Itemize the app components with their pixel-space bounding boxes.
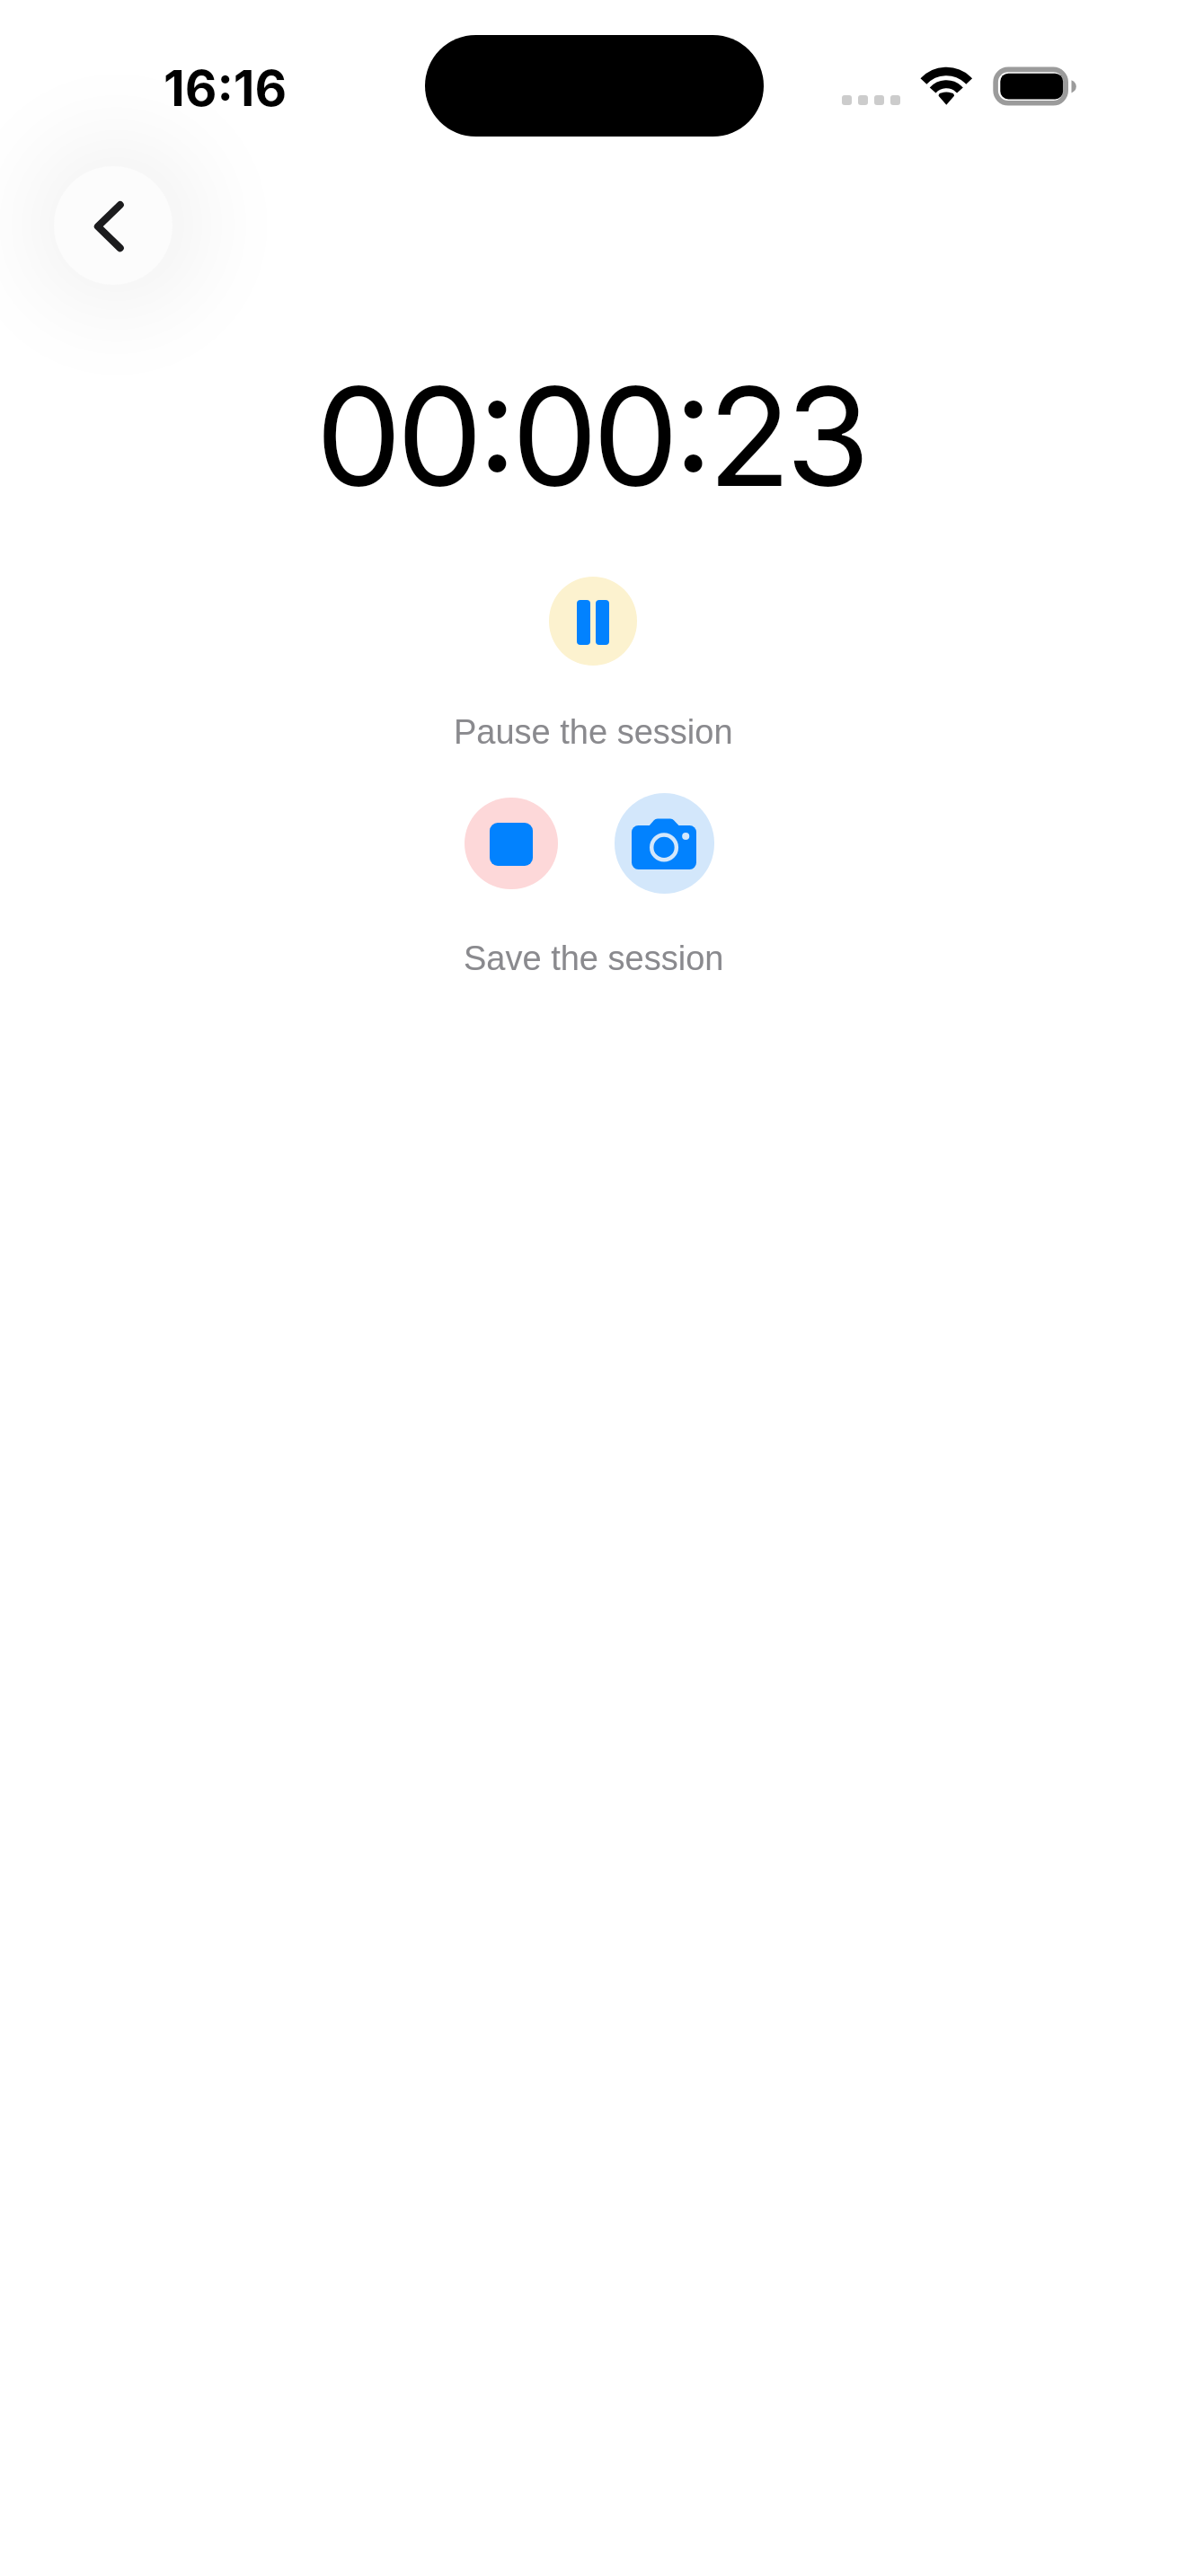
staticText: Save the session (464, 940, 724, 977)
button[interactable]: Pause the session (549, 577, 637, 666)
button[interactable]: Back (54, 166, 173, 285)
staticText: 16:16 (164, 58, 288, 119)
button[interactable]: Stop the session (465, 798, 558, 889)
staticText: Pause the session (454, 713, 733, 751)
staticText: 00:00:23 (315, 354, 865, 519)
button[interactable]: Take a photo (615, 793, 714, 894)
